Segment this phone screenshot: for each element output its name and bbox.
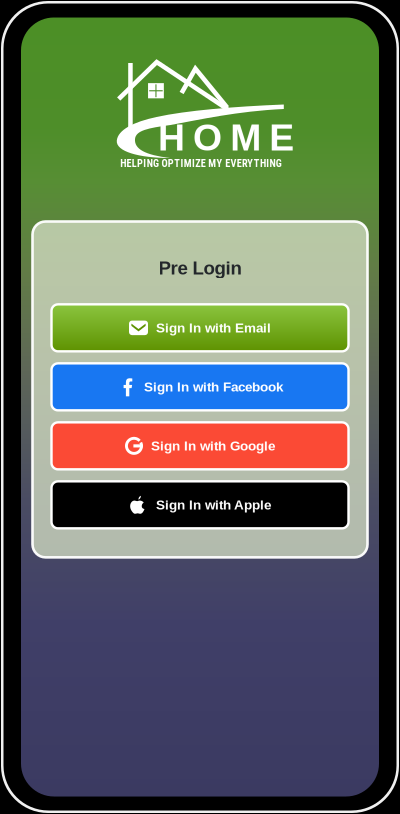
staticText: Sign In with Google: [151, 438, 275, 453]
staticText: Pre Login: [158, 257, 241, 278]
button[interactable]: Sign In with Google: [51, 422, 348, 469]
staticText: HELPING OPTIMIZE MY EVERYTHING: [120, 157, 282, 169]
staticText: Sign In with Facebook: [144, 379, 283, 394]
button[interactable]: Sign In with Apple: [51, 481, 348, 528]
staticText: HOME: [158, 117, 294, 158]
button[interactable]: Sign In with Email: [51, 304, 348, 351]
button[interactable]: Sign In with Facebook: [51, 363, 348, 410]
staticText: Sign In with Email: [156, 320, 271, 335]
staticText: Sign In with Apple: [156, 497, 271, 512]
